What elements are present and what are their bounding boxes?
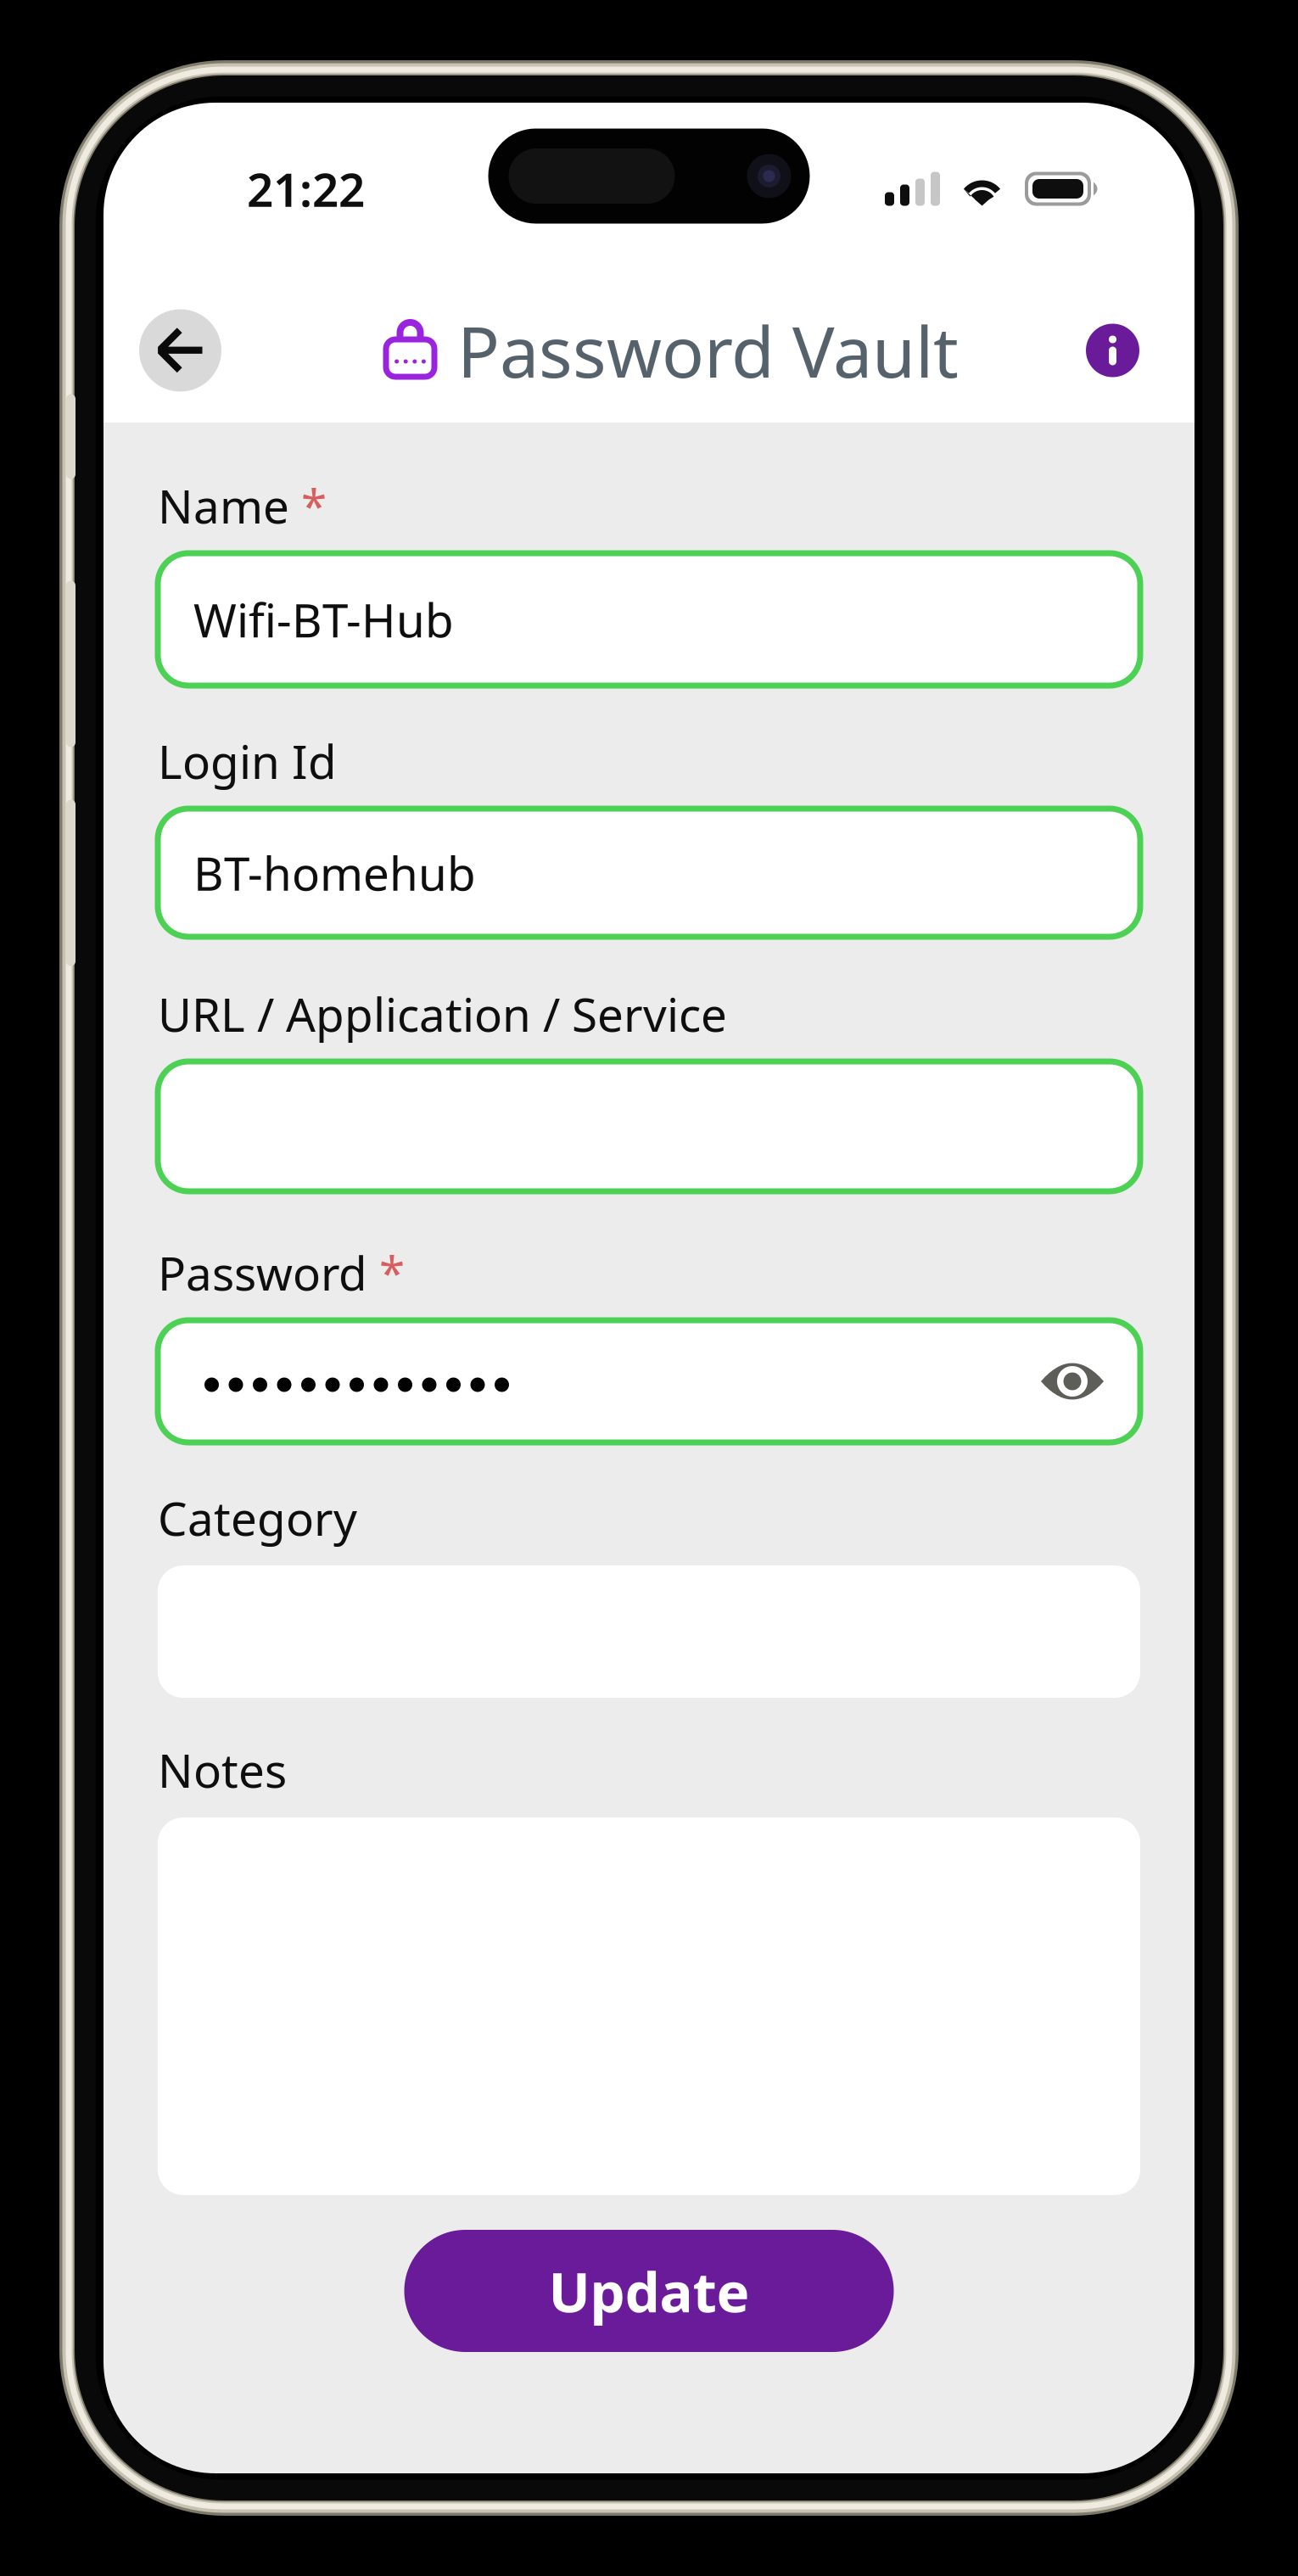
staticText: BT-homehub (193, 842, 476, 903)
staticText: URL / Application / Service (158, 983, 727, 1044)
button[interactable]: Information (1086, 324, 1139, 377)
staticText: * (367, 1242, 405, 1303)
staticText: Update (548, 2254, 750, 2328)
staticText: Category (158, 1487, 357, 1548)
button[interactable]: Update (404, 2230, 894, 2352)
staticText: 21:22 (247, 158, 365, 220)
staticText: Name (158, 475, 289, 536)
staticText: * (289, 475, 327, 536)
staticText: Password (158, 1242, 367, 1303)
button[interactable]: Show password (1041, 1360, 1104, 1403)
staticText: Login Id (158, 730, 337, 792)
staticText: Password Vault (457, 304, 959, 397)
staticText: Notes (158, 1739, 287, 1800)
button[interactable]: Back (139, 309, 221, 392)
staticText: Wifi-BT-Hub (193, 589, 454, 650)
